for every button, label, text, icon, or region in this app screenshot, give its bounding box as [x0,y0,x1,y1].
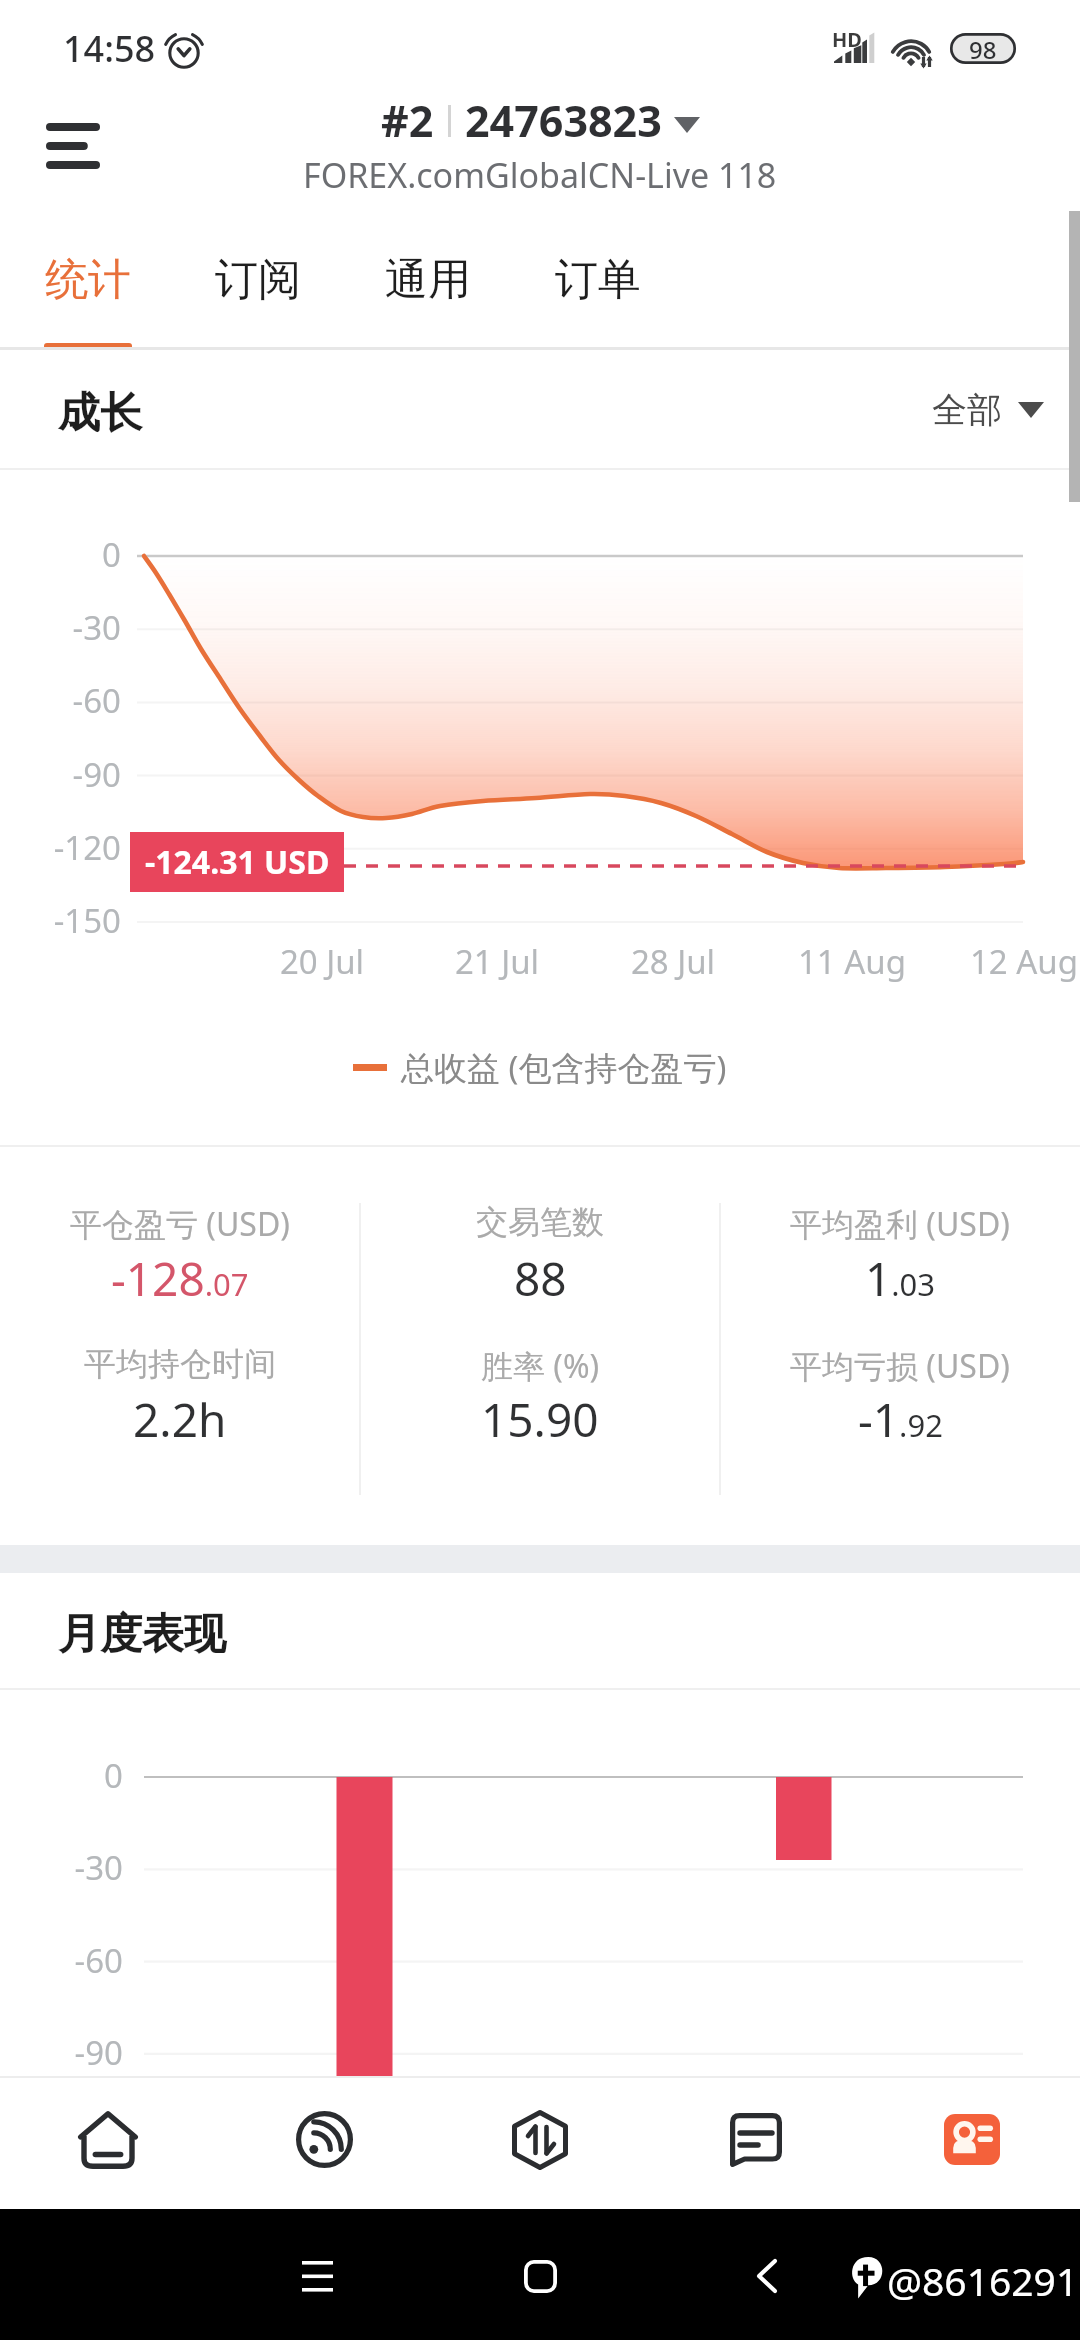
staticText: 20 Jul [232,939,412,984]
button[interactable]: Back [732,2241,802,2311]
button[interactable]: 统计 [3,210,173,350]
staticText: 胜率 (%) [481,1344,600,1388]
button[interactable]: 订单 [513,210,683,350]
staticText: 订阅 [215,253,301,307]
staticText: 0 [0,1753,123,1798]
button[interactable]: Recents [282,2241,352,2311]
staticText: 统计 [45,253,131,307]
staticText: 订单 [555,253,641,307]
staticText: 成长 [58,387,142,440]
staticText: -90 [0,2030,123,2075]
staticText: 全部 [932,388,1002,432]
staticText: -90 [0,752,121,797]
staticText: 11 Aug [762,939,942,984]
staticText: -30 [0,1845,123,1890]
staticText: 15.90 [481,1388,599,1451]
staticText: 88 [514,1247,567,1310]
button[interactable]: Trade [432,2076,648,2209]
staticText: -30 [0,605,121,650]
staticText: 总收益 (包含持仓盈亏) [401,1045,727,1090]
staticText: 28 Jul [583,939,763,984]
staticText: 21 Jul [407,939,587,984]
staticText: -60 [0,1938,123,1983]
staticText: -124.31 USD [145,840,330,884]
staticText: 24763823 [465,91,662,150]
staticText: 平均盈利 (USD) [790,1202,1010,1246]
staticText: 平仓盈亏 (USD) [70,1202,290,1246]
staticText: -150 [0,898,121,943]
staticText: 1.03 [865,1247,936,1310]
staticText: 12 Aug [934,939,1080,984]
staticText: 2.2h [133,1388,227,1451]
staticText: 14:58 [63,24,156,73]
button[interactable]: Chat [648,2076,864,2209]
staticText: -120 [0,825,121,870]
button[interactable]: 通用 [343,210,513,350]
staticText: -128.07 [111,1247,249,1310]
button[interactable]: Home [0,2076,216,2209]
staticText: 平均亏损 (USD) [790,1344,1010,1388]
staticText: 98 [969,33,997,64]
staticText: 0 [0,532,121,577]
staticText: HD [832,26,862,53]
staticText: -60 [0,678,121,723]
staticText: FOREX.comGlobalCN-Live 118 [303,152,777,198]
button[interactable]: 订阅 [173,210,343,350]
staticText: 月度表现 [58,1608,226,1661]
button[interactable]: Home [505,2241,575,2311]
button[interactable]: Accounts [864,2076,1080,2209]
staticText: 交易笔数 [476,1202,604,1242]
staticText: 通用 [385,253,471,307]
button[interactable]: Menu [0,92,150,210]
staticText: 平均持仓时间 [84,1344,276,1384]
button[interactable]: 全部 [932,388,1044,432]
staticText: #2 [381,91,434,150]
staticText: -1.92 [858,1388,943,1451]
staticText: @8616291 [887,2254,1079,2307]
button[interactable]: Signals [216,2076,432,2209]
